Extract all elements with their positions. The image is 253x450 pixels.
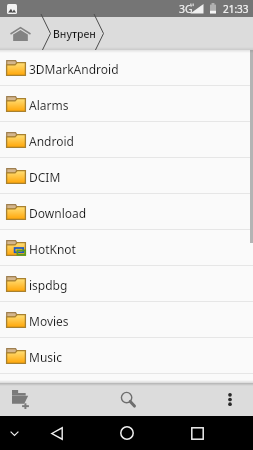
button[interactable]: Music bbox=[0, 338, 253, 373]
button[interactable]: DCIM bbox=[0, 158, 253, 193]
staticText: Alarms bbox=[29, 97, 69, 113]
button[interactable]: Download bbox=[0, 194, 253, 229]
staticText: HotKnot bbox=[29, 241, 76, 257]
staticText: 3DMarkAndroid bbox=[29, 61, 119, 77]
staticText: Внутренняя память bbox=[53, 27, 96, 41]
button[interactable]: Home bbox=[110, 416, 144, 450]
button[interactable]: Android bbox=[0, 122, 253, 157]
button[interactable]: HotKnot bbox=[0, 230, 253, 265]
button[interactable]: New folder bbox=[0, 383, 55, 416]
staticText: 3G bbox=[179, 2, 193, 16]
staticText: Android bbox=[29, 133, 74, 149]
button[interactable]: Home folder bbox=[0, 17, 40, 50]
button[interactable]: Alarms bbox=[0, 86, 253, 121]
button[interactable]: Hide keyboard bbox=[2, 416, 26, 450]
button[interactable]: More options bbox=[213, 383, 253, 416]
button[interactable]: 3DMarkAndroid bbox=[0, 50, 253, 85]
button[interactable]: ispdbg bbox=[0, 266, 253, 301]
staticText: Music bbox=[29, 349, 62, 365]
staticText: DCIM bbox=[29, 169, 61, 185]
staticText: Download bbox=[29, 205, 87, 221]
staticText: Movies bbox=[29, 313, 69, 329]
button[interactable]: Movies bbox=[0, 302, 253, 337]
button[interactable]: Recent apps bbox=[180, 416, 214, 450]
staticText: 21:33 bbox=[223, 2, 249, 16]
staticText: ispdbg bbox=[29, 277, 68, 293]
button[interactable]: Search bbox=[55, 383, 213, 416]
button[interactable]: Back bbox=[40, 416, 74, 450]
